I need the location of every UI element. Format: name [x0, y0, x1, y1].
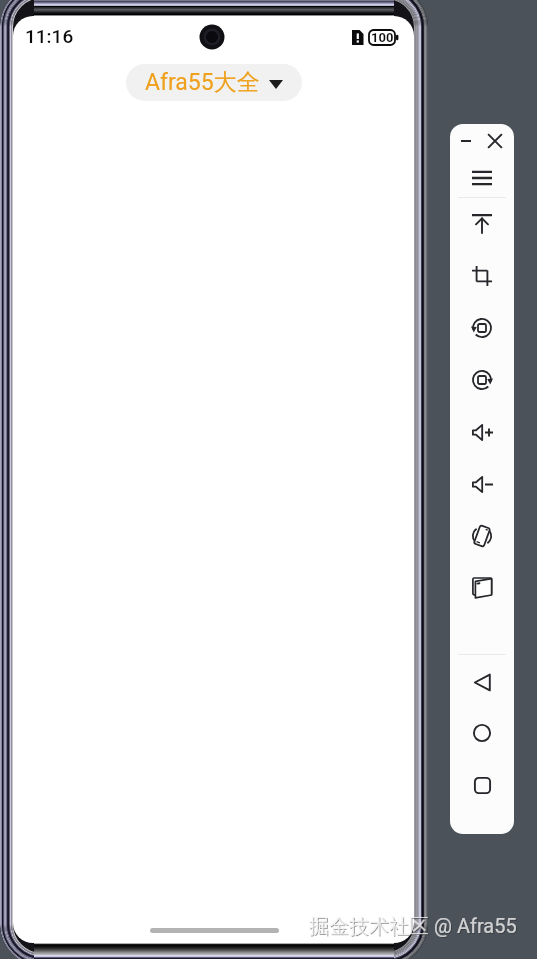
- staticText: 掘金技术社区 @ Afra55: [309, 914, 517, 939]
- button[interactable]: Back: [461, 663, 503, 701]
- button[interactable]: Crop: [461, 257, 503, 295]
- button[interactable]: Afra55大全: [126, 64, 302, 101]
- staticText: 100: [371, 30, 394, 45]
- button[interactable]: Volume up: [461, 413, 503, 451]
- button[interactable]: Fold: [461, 569, 503, 607]
- staticText: 11:16: [25, 25, 74, 47]
- button[interactable]: Menu: [461, 159, 503, 197]
- button[interactable]: Home: [461, 714, 503, 752]
- button[interactable]: Rotate right: [461, 361, 503, 399]
- button[interactable]: Move to top: [461, 205, 503, 243]
- button[interactable]: Minimize: [452, 127, 480, 155]
- button[interactable]: Rotate left: [461, 309, 503, 347]
- button[interactable]: Close: [481, 127, 509, 155]
- staticText: 掘金技术社区 @ Afra55: [310, 915, 518, 940]
- staticText: Afra55大全: [145, 68, 260, 97]
- button[interactable]: Recents: [461, 766, 503, 804]
- button[interactable]: Volume down: [461, 465, 503, 503]
- button[interactable]: Rotate device: [461, 517, 503, 555]
